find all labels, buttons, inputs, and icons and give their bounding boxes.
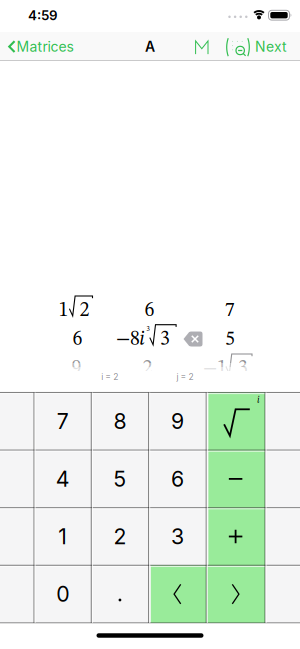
staticText: 3 xyxy=(238,359,248,379)
button[interactable]: 8 xyxy=(92,393,148,449)
staticText: 8 xyxy=(113,408,126,434)
button[interactable]: Zoom matrix xyxy=(225,37,251,59)
button[interactable]: 2 xyxy=(92,508,148,564)
button[interactable]: Previous element xyxy=(149,566,205,622)
button[interactable]: 0 xyxy=(35,566,91,622)
staticText: Matrices xyxy=(16,38,73,55)
button[interactable]: 1 xyxy=(35,508,91,564)
staticText: 0 xyxy=(56,581,69,607)
staticText: i = 2 xyxy=(101,372,118,382)
staticText: i xyxy=(257,396,260,405)
staticText: j = 2 xyxy=(176,372,193,382)
button[interactable]: Next xyxy=(255,38,287,55)
staticText: 2 xyxy=(113,524,126,549)
button[interactable]: 6 xyxy=(149,451,205,507)
staticText: A xyxy=(145,38,155,55)
button[interactable]: Root xyxy=(207,393,264,450)
staticText: 2 xyxy=(142,359,152,379)
staticText: Next xyxy=(255,38,287,55)
staticText: 9 xyxy=(171,408,184,434)
staticText: 6 xyxy=(144,301,154,321)
button[interactable]: 7 xyxy=(35,393,91,449)
staticText: −1 xyxy=(203,359,227,379)
button[interactable]: 3 xyxy=(149,508,205,564)
button[interactable]: Decimal point xyxy=(92,572,148,628)
staticText: 2 xyxy=(80,301,90,321)
button[interactable]: Minus xyxy=(207,450,264,507)
staticText: 5 xyxy=(113,466,126,492)
button[interactable]: Matrices xyxy=(8,38,73,55)
staticText: 1 xyxy=(58,301,68,321)
button[interactable]: 4 xyxy=(35,451,91,507)
staticText: 4 xyxy=(56,466,70,492)
staticText: 7 xyxy=(57,408,69,434)
staticText: 9 xyxy=(71,359,81,379)
staticText: 1 xyxy=(58,524,67,549)
staticText: 3 xyxy=(171,524,184,549)
button[interactable]: Next element xyxy=(208,566,264,622)
staticText: 6 xyxy=(72,329,82,349)
staticText: 3 xyxy=(146,325,150,333)
button[interactable]: Delete xyxy=(183,331,202,346)
button[interactable]: 5 xyxy=(92,451,148,507)
staticText: i xyxy=(139,329,145,349)
button[interactable]: 9 xyxy=(149,393,205,449)
staticText: 6 xyxy=(171,466,184,492)
staticText: −8 xyxy=(116,329,140,349)
staticText: 3 xyxy=(160,329,170,349)
staticText: 7 xyxy=(225,301,235,321)
staticText: 4:59 xyxy=(28,7,58,23)
button[interactable]: Matrix xyxy=(195,40,209,54)
button[interactable]: Plus xyxy=(207,508,264,565)
staticText: 5 xyxy=(225,329,235,349)
